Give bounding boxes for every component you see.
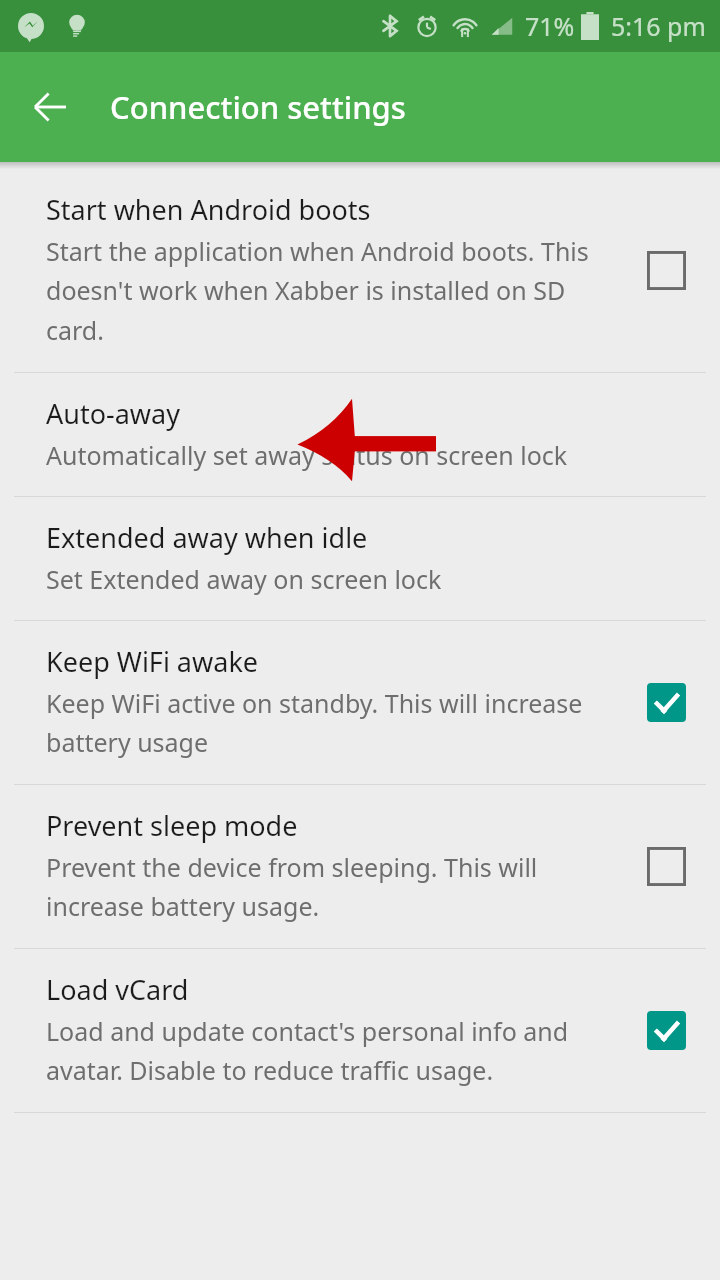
staticText: Extended away when idle	[46, 519, 368, 556]
staticText: Prevent sleep mode	[46, 807, 298, 844]
staticText: Automatically set away status on screen …	[46, 438, 568, 472]
staticText: Prevent the device from sleeping. This w…	[46, 850, 618, 924]
staticText: Auto-away	[46, 395, 181, 432]
button[interactable]: Checked	[640, 1004, 692, 1056]
button[interactable]: Keep WiFi awake	[0, 621, 720, 784]
staticText: Start the application when Android boots…	[46, 234, 618, 348]
button[interactable]: Checked	[640, 676, 692, 728]
button[interactable]: Prevent sleep mode	[0, 785, 720, 948]
button[interactable]: Unchecked	[640, 244, 692, 296]
staticText: Start when Android boots	[46, 191, 371, 228]
staticText: Connection settings	[110, 86, 406, 128]
staticText: Keep WiFi awake	[46, 643, 259, 680]
staticText: Keep WiFi active on standby. This will i…	[46, 686, 618, 760]
button[interactable]: Extended away when idle	[0, 497, 720, 620]
button[interactable]: Load vCard	[0, 949, 720, 1112]
button[interactable]: Back	[20, 77, 80, 137]
staticText: 71%	[525, 9, 575, 43]
button[interactable]: Auto-away	[0, 373, 720, 496]
staticText: Load and update contact's personal info …	[46, 1014, 618, 1088]
button[interactable]: Unchecked	[640, 840, 692, 892]
button[interactable]: Start when Android boots	[0, 169, 720, 372]
staticText: Set Extended away on screen lock	[46, 562, 442, 596]
staticText: 5:16 pm	[611, 9, 706, 43]
staticText: Load vCard	[46, 971, 189, 1008]
